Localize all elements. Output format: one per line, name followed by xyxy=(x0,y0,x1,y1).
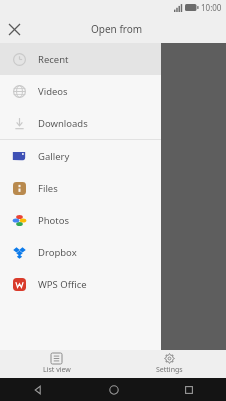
staticText: Files xyxy=(38,182,58,195)
staticText: Open from xyxy=(91,22,143,36)
button[interactable]: Recents xyxy=(151,378,226,401)
button[interactable]: List view xyxy=(0,350,113,378)
button[interactable]: Videos xyxy=(0,75,161,107)
staticText: List view xyxy=(43,365,71,375)
staticText: Videos xyxy=(38,85,68,98)
button[interactable]: Recent xyxy=(0,43,161,75)
staticText: Recent xyxy=(38,53,69,66)
button[interactable]: Home xyxy=(76,378,151,401)
staticText: Gallery xyxy=(38,150,70,163)
button[interactable]: Back xyxy=(0,378,76,401)
staticText: Photos xyxy=(38,214,70,227)
button[interactable]: WPS Office xyxy=(0,268,161,300)
staticText: Downloads xyxy=(38,117,88,130)
button[interactable]: Settings xyxy=(113,350,226,378)
staticText: 10:00 xyxy=(201,2,222,13)
button[interactable]: Close xyxy=(0,15,28,43)
button[interactable]: Gallery xyxy=(0,140,161,172)
staticText: Dropbox xyxy=(38,246,77,259)
button[interactable]: Photos xyxy=(0,204,161,236)
staticText: WPS Office xyxy=(38,278,87,291)
button[interactable]: Downloads xyxy=(0,107,161,139)
button[interactable]: Files xyxy=(0,172,161,204)
button[interactable]: Dropbox xyxy=(0,236,161,268)
staticText: Settings xyxy=(156,365,183,375)
